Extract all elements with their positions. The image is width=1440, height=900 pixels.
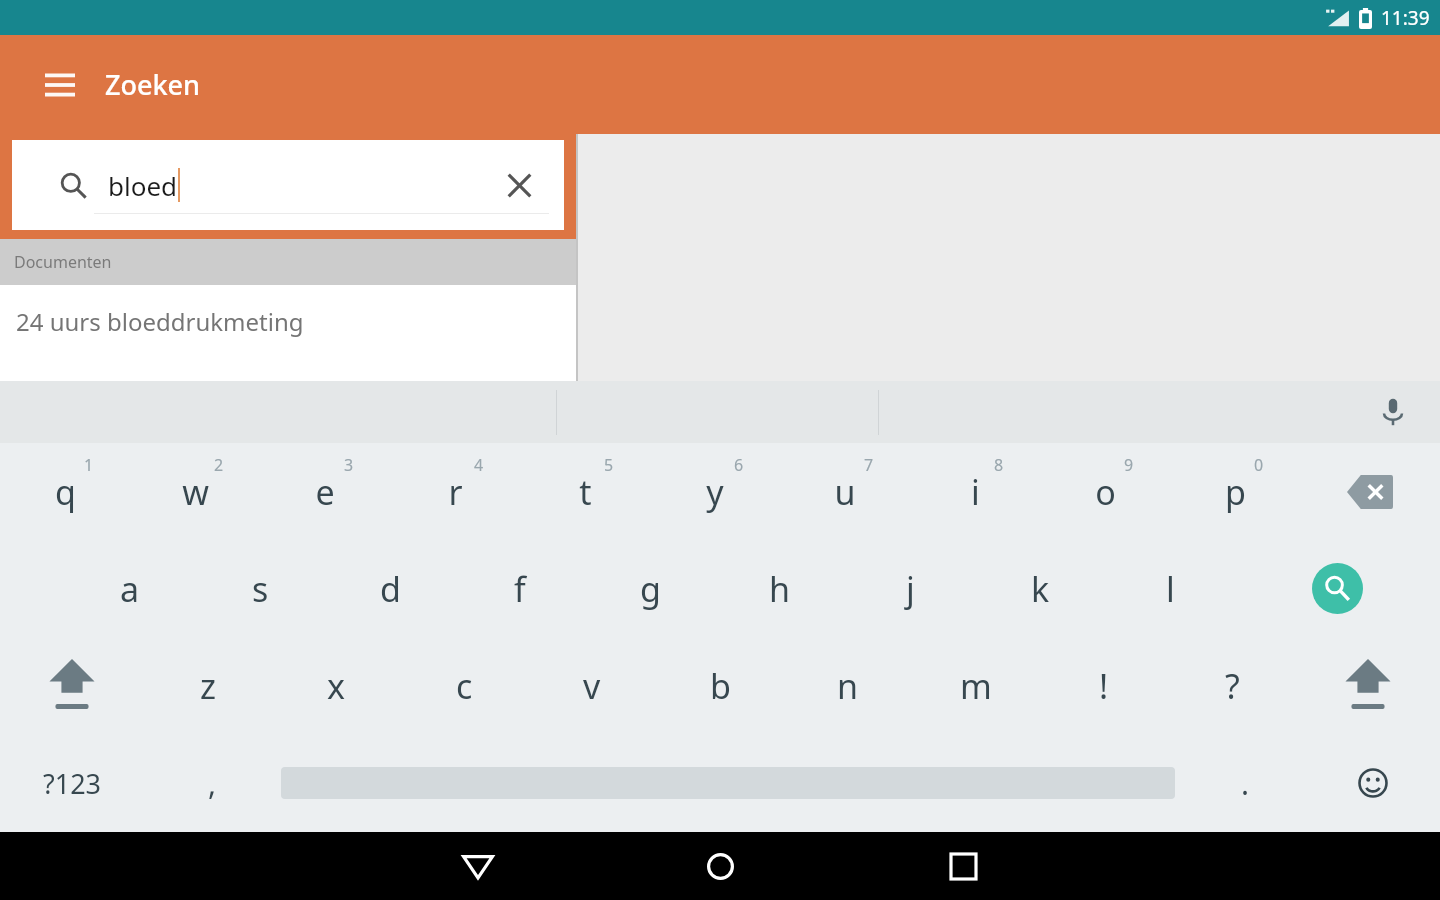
button[interactable]: Search	[1235, 540, 1440, 637]
button[interactable]: f	[455, 540, 585, 637]
button[interactable]: y	[650, 443, 780, 540]
button[interactable]: 24 uurs bloeddrukmeting	[0, 285, 576, 381]
button[interactable]: e	[260, 443, 390, 540]
staticText: y	[706, 469, 724, 515]
button[interactable]: d	[325, 540, 455, 637]
button[interactable]: Voice input	[1368, 387, 1418, 437]
staticText: r	[448, 469, 463, 515]
button[interactable]: Shift	[1296, 637, 1440, 734]
button[interactable]: Shift	[0, 637, 144, 734]
button[interactable]: !	[1040, 637, 1168, 734]
staticText: 8	[994, 454, 1004, 476]
button[interactable]: v	[528, 637, 656, 734]
button[interactable]: x	[272, 637, 400, 734]
button[interactable]: o	[1040, 443, 1170, 540]
button[interactable]: j	[845, 540, 975, 637]
staticText: 1	[84, 454, 94, 476]
button[interactable]: g	[585, 540, 715, 637]
button[interactable]: a	[65, 540, 195, 637]
staticText: 24 uurs bloeddrukmeting	[16, 305, 304, 338]
staticText: 2	[214, 454, 224, 476]
button[interactable]: l	[1105, 540, 1235, 637]
button[interactable]: q	[0, 443, 130, 540]
staticText: 5	[604, 454, 614, 476]
staticText: ,	[208, 763, 217, 804]
button[interactable]: Home	[685, 832, 755, 900]
button[interactable]: Back	[443, 832, 513, 900]
staticText: i	[971, 469, 980, 515]
staticText: m	[960, 663, 992, 709]
staticText: ?	[1225, 663, 1240, 709]
staticText: n	[837, 663, 859, 709]
staticText: ?123	[43, 765, 102, 802]
staticText: b	[710, 663, 731, 709]
button[interactable]: i	[910, 443, 1040, 540]
button[interactable]: k	[975, 540, 1105, 637]
staticText: p	[1225, 469, 1246, 515]
staticText: Zoeken	[105, 66, 201, 103]
staticText: a	[120, 566, 140, 612]
staticText: 6	[734, 454, 744, 476]
button[interactable]: ,	[170, 748, 254, 818]
button[interactable]: ?123	[22, 748, 122, 818]
staticText: .	[1241, 763, 1250, 804]
button[interactable]: r	[390, 443, 520, 540]
staticText: 4	[474, 454, 484, 476]
button[interactable]: c	[400, 637, 528, 734]
staticText: !	[1099, 663, 1109, 709]
staticText: Documenten	[14, 251, 112, 273]
staticText: w	[182, 469, 209, 515]
button[interactable]: Backspace	[1300, 443, 1440, 540]
staticText: t	[579, 469, 592, 515]
button[interactable]: m	[912, 637, 1040, 734]
staticText: 7	[864, 454, 874, 476]
button[interactable]: b	[656, 637, 784, 734]
staticText: 11:39	[1381, 5, 1430, 31]
button[interactable]: n	[784, 637, 912, 734]
button[interactable]: h	[715, 540, 845, 637]
staticText: g	[640, 566, 661, 612]
staticText: e	[315, 469, 335, 515]
button[interactable]: s	[195, 540, 325, 637]
staticText: u	[834, 469, 856, 515]
staticText: d	[380, 566, 401, 612]
staticText: z	[200, 663, 216, 709]
staticText: s	[252, 566, 269, 612]
staticText: bloed	[108, 168, 178, 203]
button[interactable]: Open navigation menu	[32, 57, 88, 113]
staticText: x	[327, 663, 345, 709]
staticText: v	[583, 663, 601, 709]
staticText: 3	[344, 454, 354, 476]
staticText: j	[906, 566, 915, 612]
button[interactable]: Recent apps	[928, 832, 998, 900]
button[interactable]: Emoji	[1346, 756, 1400, 810]
button[interactable]: ?	[1168, 637, 1296, 734]
button[interactable]: u	[780, 443, 910, 540]
button[interactable]: t	[520, 443, 650, 540]
button[interactable]: .	[1205, 748, 1285, 818]
staticText: 9	[1124, 454, 1134, 476]
staticText: q	[55, 469, 76, 515]
staticText: l	[1166, 566, 1175, 612]
staticText: o	[1095, 469, 1116, 515]
staticText: h	[769, 566, 791, 612]
button[interactable]: p	[1170, 443, 1300, 540]
staticText: c	[456, 663, 473, 709]
button[interactable]: bloed	[12, 140, 564, 230]
button[interactable]: w	[130, 443, 260, 540]
staticText: 0	[1254, 454, 1264, 476]
button[interactable]: z	[144, 637, 272, 734]
staticText: k	[1031, 566, 1050, 612]
button[interactable]: Clear search	[496, 162, 542, 208]
staticText: f	[514, 566, 526, 612]
